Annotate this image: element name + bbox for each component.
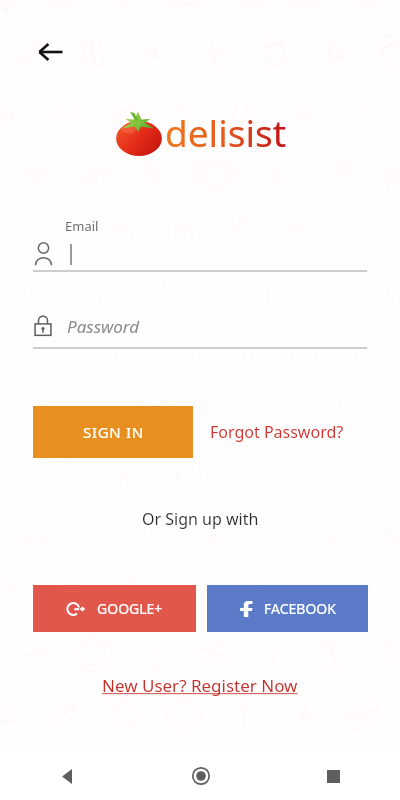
button[interactable]: Back (0, 752, 134, 800)
staticText: GOOGLE+ (97, 599, 163, 618)
staticText: New User? Register Now (102, 674, 298, 697)
other: Email (34, 242, 53, 266)
button[interactable]: New User? Register Now (96, 670, 304, 701)
button[interactable]: Home (134, 752, 267, 800)
button[interactable]: Back (26, 28, 74, 76)
staticText: delisist (165, 107, 287, 157)
button[interactable]: GOOGLE+ (33, 585, 196, 632)
staticText: Forgot Password? (210, 421, 344, 443)
staticText: Email (65, 217, 99, 235)
button[interactable]: FACEBOOK (207, 585, 368, 632)
staticText: FACEBOOK (264, 599, 336, 618)
staticText: Or Sign up with (142, 508, 259, 530)
button[interactable]: Recent apps (267, 752, 400, 800)
button[interactable]: Forgot Password? (210, 417, 344, 447)
staticText: SIGN IN (83, 422, 144, 442)
staticText: Password (67, 315, 140, 338)
other: Password (34, 314, 52, 336)
button[interactable]: SIGN IN (33, 406, 193, 458)
